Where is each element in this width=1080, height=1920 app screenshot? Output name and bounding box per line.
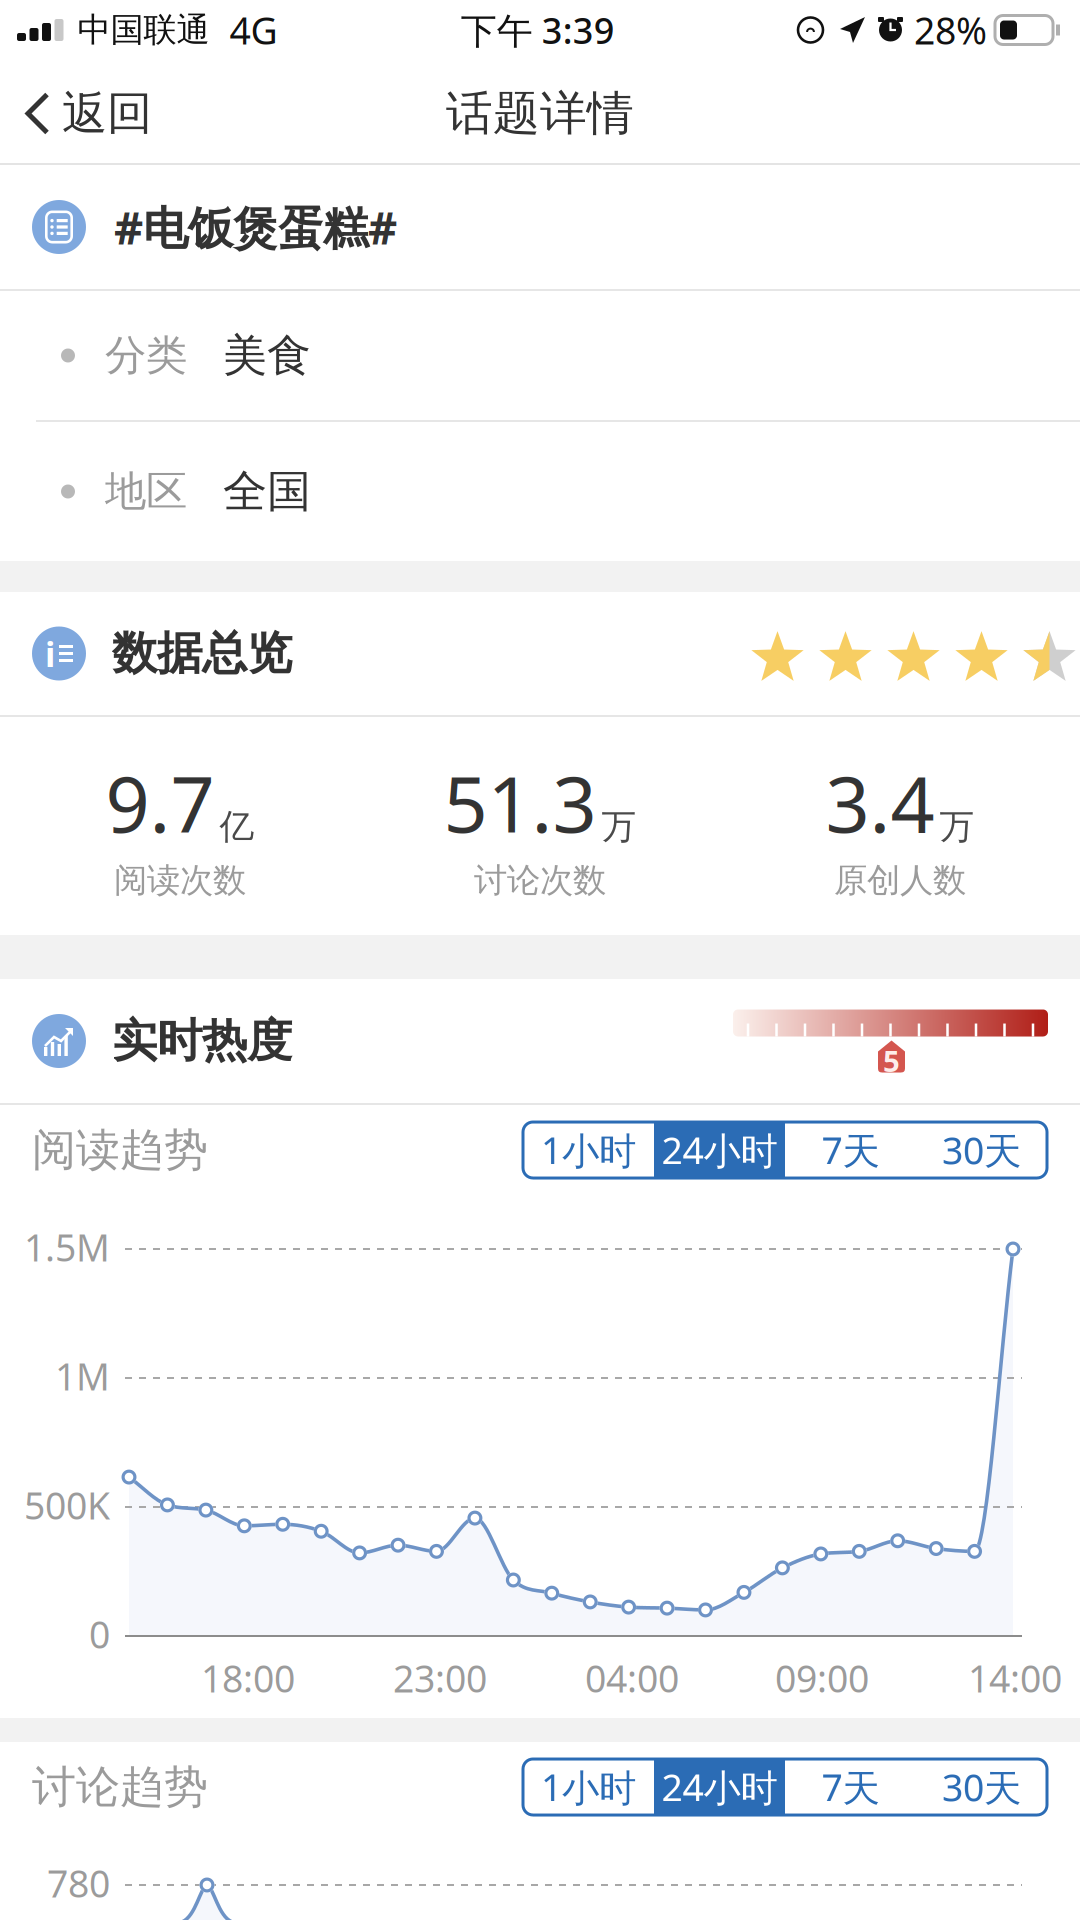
staticText: 780 (47, 1858, 110, 1908)
button[interactable]: 返回 (0, 62, 178, 165)
staticText: 美食 (223, 328, 311, 382)
staticText: 24小时 (661, 1762, 777, 1812)
staticText: 09:00 (775, 1653, 869, 1703)
staticText: 4G (229, 5, 277, 55)
staticText: 500K (24, 1480, 110, 1530)
staticText: 讨论次数 (474, 860, 606, 901)
button[interactable]: 7天 (785, 1122, 916, 1178)
staticText: 30天 (942, 1762, 1021, 1812)
staticText: 14:00 (968, 1653, 1062, 1703)
staticText: 阅读趋势 (32, 1123, 208, 1177)
button[interactable]: 24小时 (654, 1759, 785, 1815)
staticText: 18:00 (201, 1653, 295, 1703)
button[interactable]: 24小时 (654, 1122, 785, 1178)
staticText: 7天 (821, 1125, 879, 1175)
staticText: 1小时 (541, 1762, 636, 1812)
staticText: 30天 (942, 1125, 1021, 1175)
staticText: 万 (939, 805, 974, 848)
button[interactable]: 地区 (0, 422, 1080, 561)
staticText: 23:00 (393, 1653, 487, 1703)
staticText: 原创人数 (834, 860, 966, 901)
staticText: 地区 (105, 466, 187, 517)
staticText: i (45, 630, 55, 676)
staticText: 1M (55, 1351, 110, 1401)
staticText: 04:00 (585, 1653, 679, 1703)
staticText: 下午 3:39 (461, 6, 615, 54)
staticText: 28% (914, 5, 987, 55)
staticText: 0 (89, 1609, 110, 1659)
button[interactable]: 1小时 (523, 1759, 654, 1815)
staticText: 万 (601, 805, 636, 848)
staticText: 分类 (105, 330, 187, 381)
staticText: 话题详情 (446, 85, 634, 142)
button[interactable]: 7天 (785, 1759, 916, 1815)
staticText: #电饭煲蛋糕# (114, 197, 397, 257)
staticText: 阅读次数 (114, 860, 246, 901)
button[interactable]: 分类 (0, 291, 1080, 420)
staticText: 亿 (219, 805, 254, 848)
staticText: 24小时 (661, 1125, 777, 1175)
staticText: 5 (883, 1041, 900, 1080)
staticText: 返回 (62, 86, 152, 141)
staticText: 全国 (223, 464, 311, 518)
staticText: 7天 (821, 1762, 879, 1812)
staticText: 51.3 (443, 751, 596, 854)
button[interactable]: #电饭煲蛋糕# (0, 165, 1080, 289)
staticText: 1小时 (541, 1125, 636, 1175)
button[interactable]: 30天 (916, 1759, 1047, 1815)
staticText: 数据总览 (112, 626, 292, 681)
staticText: 实时热度 (112, 1013, 292, 1069)
staticText: 中国联通 (77, 9, 209, 50)
staticText: 1.5M (24, 1222, 110, 1272)
button[interactable]: 30天 (916, 1122, 1047, 1178)
staticText: 3.4 (825, 751, 934, 854)
staticText: 讨论趋势 (32, 1760, 208, 1814)
staticText: 9.7 (105, 751, 214, 854)
button[interactable]: 1小时 (523, 1122, 654, 1178)
